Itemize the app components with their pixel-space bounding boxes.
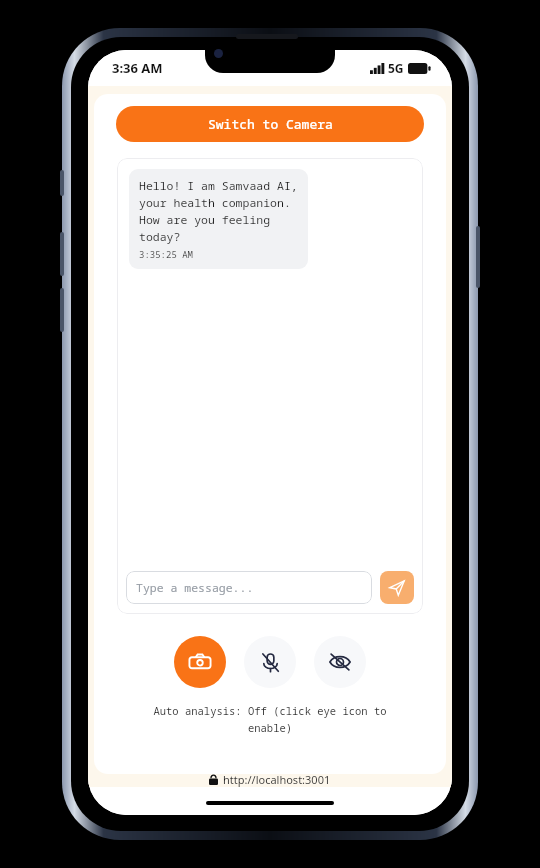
- staticText: 3:35:25 AM: [139, 248, 194, 260]
- button[interactable]: Toggle auto analysis: [314, 636, 366, 688]
- button[interactable]: Type a message...: [126, 571, 372, 604]
- staticText: Switch to Camera: [208, 115, 333, 133]
- staticText: 3:36 AM: [112, 59, 163, 77]
- staticText: Auto analysis: Off (click eye icon to en…: [134, 704, 406, 735]
- staticText: 5G: [388, 60, 404, 76]
- staticText: http://localhost:3001: [223, 772, 331, 787]
- button[interactable]: Microphone off: [244, 636, 296, 688]
- staticText: Hello! I am Samvaad AI, your health comp…: [139, 178, 298, 245]
- button[interactable]: Send: [380, 571, 414, 604]
- button[interactable]: Switch to Camera: [116, 106, 424, 142]
- staticText: Type a message...: [136, 580, 254, 596]
- button[interactable]: Capture photo: [174, 636, 226, 688]
